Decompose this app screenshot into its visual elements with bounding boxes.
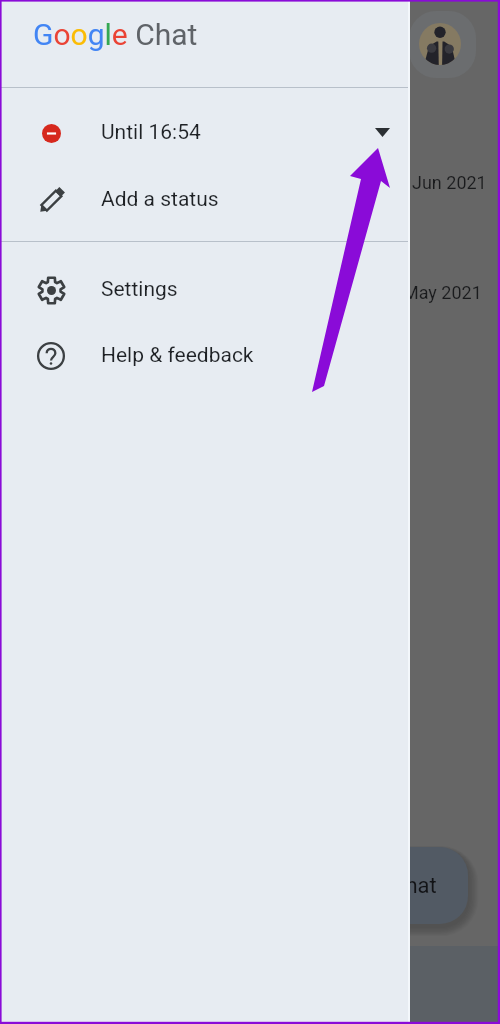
staticText: Google Chat bbox=[33, 17, 198, 52]
button[interactable]: Add a status bbox=[0, 166, 410, 233]
staticText: Settings bbox=[101, 277, 178, 302]
other: Do not disturb bbox=[42, 124, 61, 143]
button[interactable]: Settings bbox=[0, 256, 410, 323]
button[interactable]: Help & feedback bbox=[0, 322, 410, 389]
button[interactable]: Do not disturb bbox=[0, 99, 410, 166]
staticText: Help & feedback bbox=[101, 343, 254, 368]
button[interactable]: Account bbox=[419, 23, 461, 65]
staticText: w chat bbox=[372, 873, 437, 899]
staticText: Until 16:54 bbox=[101, 120, 201, 145]
staticText: Jun 2021 bbox=[412, 172, 487, 193]
other: Expand bbox=[375, 128, 390, 137]
staticText: Add a status bbox=[101, 187, 219, 212]
staticText: May 2021 bbox=[403, 282, 482, 303]
button[interactable]: w chat bbox=[330, 847, 468, 924]
